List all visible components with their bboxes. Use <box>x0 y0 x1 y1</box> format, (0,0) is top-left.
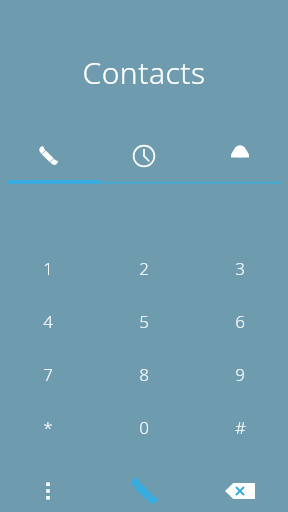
button[interactable]: 3 <box>192 242 288 295</box>
button[interactable]: 1 <box>0 242 96 295</box>
button[interactable]: Call <box>96 470 192 512</box>
staticText: * <box>43 416 53 439</box>
button[interactable]: 6 <box>192 295 288 348</box>
button[interactable]: Recent calls tab <box>96 139 192 173</box>
staticText: 7 <box>43 363 53 386</box>
button[interactable]: 2 <box>96 242 192 295</box>
button[interactable]: Contacts tab <box>192 139 288 173</box>
button[interactable]: 4 <box>0 295 96 348</box>
staticText: 0 <box>139 416 149 439</box>
button[interactable]: # <box>192 401 288 454</box>
staticText: # <box>235 416 246 439</box>
button[interactable]: More options <box>0 470 96 512</box>
staticText: 3 <box>235 257 245 280</box>
button[interactable]: 5 <box>96 295 192 348</box>
staticText: 9 <box>235 363 245 386</box>
button[interactable]: Backspace <box>192 470 288 512</box>
staticText: 4 <box>43 310 53 333</box>
button[interactable]: 0 <box>96 401 192 454</box>
staticText: 8 <box>139 363 149 386</box>
staticText: 2 <box>139 257 149 280</box>
button[interactable]: 7 <box>0 348 96 401</box>
staticText: 1 <box>43 257 53 280</box>
staticText: 5 <box>139 310 149 333</box>
button[interactable]: Dialpad tab <box>0 139 96 173</box>
staticText: 6 <box>235 310 245 333</box>
button[interactable]: 8 <box>96 348 192 401</box>
staticText: Contacts <box>82 52 206 93</box>
button[interactable]: * <box>0 401 96 454</box>
button[interactable]: 9 <box>192 348 288 401</box>
